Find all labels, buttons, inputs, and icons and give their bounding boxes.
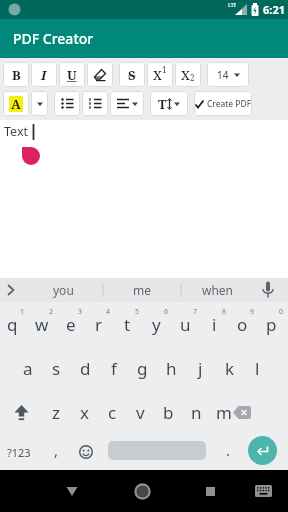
button[interactable] — [249, 470, 277, 512]
button[interactable]: t — [113, 302, 142, 346]
staticText: Create PDF — [207, 98, 252, 110]
button[interactable]: B — [3, 62, 29, 87]
staticText: X — [153, 66, 162, 84]
button[interactable]: you — [25, 278, 102, 302]
staticText: 8 — [222, 307, 227, 317]
button[interactable]: i — [200, 302, 229, 346]
staticText: a — [23, 357, 33, 380]
button[interactable]: . — [216, 432, 240, 468]
button[interactable]: r — [84, 302, 113, 346]
staticText: 1 — [162, 64, 167, 75]
button[interactable]: U — [59, 62, 85, 87]
button[interactable]: X — [175, 62, 201, 87]
button[interactable] — [196, 470, 224, 512]
button[interactable] — [58, 470, 86, 512]
button[interactable]: s — [42, 346, 71, 390]
staticText: LTE — [228, 2, 237, 9]
button[interactable] — [108, 441, 206, 460]
staticText: x — [80, 401, 89, 424]
button[interactable]: n — [182, 390, 210, 434]
staticText: PDF Creator — [13, 29, 94, 48]
button[interactable]: q — [0, 302, 27, 346]
staticText: e — [66, 313, 76, 336]
button[interactable]: u — [171, 302, 200, 346]
staticText: 3 — [78, 307, 83, 317]
button[interactable] — [0, 278, 22, 302]
button[interactable]: A — [3, 91, 29, 116]
staticText: 6:21 — [263, 2, 285, 17]
staticText: j — [198, 357, 203, 380]
staticText: T — [158, 95, 167, 113]
button[interactable]: Create PDF — [194, 91, 252, 116]
button[interactable]: p — [257, 302, 286, 346]
button[interactable]: ?123 — [2, 434, 36, 470]
staticText: y — [152, 313, 161, 336]
button[interactable]: j — [186, 346, 215, 390]
staticText: f — [111, 357, 117, 380]
button[interactable]: me — [104, 278, 180, 302]
button[interactable]: x — [70, 390, 98, 434]
staticText: v — [136, 401, 145, 424]
button[interactable] — [248, 436, 277, 465]
button[interactable]: z — [42, 390, 70, 434]
button[interactable] — [74, 434, 98, 470]
button[interactable]: m — [210, 390, 238, 434]
staticText: b — [163, 401, 174, 424]
button[interactable]: X — [147, 62, 173, 87]
button[interactable]: k — [215, 346, 244, 390]
staticText: when — [202, 282, 234, 298]
staticText: l — [255, 357, 260, 380]
staticText: k — [225, 357, 235, 380]
staticText: X — [181, 66, 190, 84]
staticText: S — [128, 66, 136, 84]
staticText: 6 — [164, 307, 169, 317]
button[interactable]: S — [119, 62, 145, 87]
staticText: 4 — [106, 307, 111, 317]
staticText: n — [191, 401, 202, 424]
button[interactable] — [4, 390, 38, 434]
button[interactable] — [54, 91, 80, 116]
staticText: h — [166, 357, 177, 380]
button[interactable] — [224, 390, 260, 434]
button[interactable]: l — [243, 346, 272, 390]
button[interactable]: a — [13, 346, 42, 390]
button[interactable]: I — [31, 62, 57, 87]
button[interactable]: v — [126, 390, 154, 434]
staticText: 0 — [279, 307, 284, 317]
button[interactable]: b — [154, 390, 182, 434]
button[interactable]: e — [56, 302, 85, 346]
staticText: d — [80, 357, 91, 380]
staticText: g — [137, 357, 148, 380]
staticText: 9 — [250, 307, 255, 317]
staticText: Text — [4, 123, 29, 140]
button[interactable]: w — [27, 302, 56, 346]
staticText: w — [35, 313, 49, 336]
button[interactable]: o — [228, 302, 257, 346]
button[interactable]: when — [182, 278, 254, 302]
button[interactable] — [82, 91, 108, 116]
button[interactable]: T — [150, 91, 188, 116]
button[interactable]: h — [157, 346, 186, 390]
button[interactable]: y — [142, 302, 171, 346]
staticText: 2 — [49, 307, 54, 317]
staticText: 1 — [20, 307, 25, 317]
staticText: p — [266, 313, 277, 336]
staticText: 2 — [190, 72, 195, 83]
button[interactable]: d — [71, 346, 100, 390]
staticText: 7 — [193, 307, 198, 317]
button[interactable]: , — [44, 432, 68, 468]
button[interactable]: f — [99, 346, 128, 390]
staticText: I — [41, 66, 47, 84]
button[interactable] — [87, 62, 113, 87]
staticText: u — [180, 313, 191, 336]
staticText: me — [133, 282, 151, 298]
button[interactable] — [128, 470, 156, 512]
button[interactable]: g — [128, 346, 157, 390]
staticText: 5 — [135, 307, 140, 317]
staticText: i — [212, 313, 217, 336]
button[interactable]: 14 — [207, 62, 249, 87]
button[interactable] — [110, 91, 144, 116]
staticText: q — [7, 313, 18, 336]
button[interactable] — [31, 91, 48, 116]
button[interactable]: c — [98, 390, 126, 434]
